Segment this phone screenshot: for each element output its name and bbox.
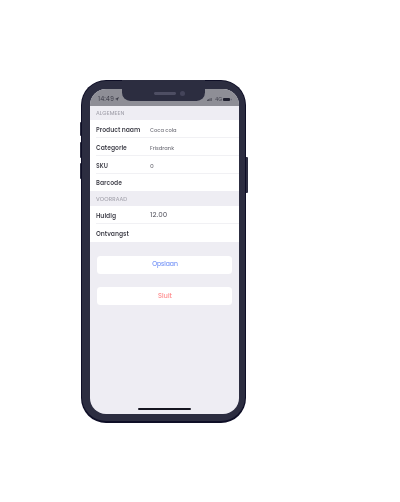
staticText: Ontvangst <box>96 230 129 239</box>
button[interactable]: Sluit <box>97 287 232 305</box>
staticText: Barcode <box>96 179 122 188</box>
button[interactable]: Product naam <box>90 120 239 138</box>
staticText: 14:49 <box>98 94 114 103</box>
staticText: Coca cola <box>150 127 177 134</box>
button[interactable]: Categorie <box>90 138 239 156</box>
staticText: Product naam <box>96 126 141 135</box>
staticText: Sluit <box>158 291 172 300</box>
button[interactable]: SKU <box>90 156 239 174</box>
staticText: Categorie <box>96 144 127 153</box>
staticText: Opslaan <box>152 260 178 269</box>
other: Location <box>115 97 119 101</box>
staticText: SKU <box>96 162 108 171</box>
staticText: VOORRAAD <box>96 195 128 203</box>
staticText: ALGEMEEN <box>96 109 125 117</box>
button[interactable]: Huidig <box>90 206 239 224</box>
button[interactable]: Ontvangst <box>90 224 239 242</box>
button[interactable]: Opslaan <box>97 256 232 274</box>
staticText: Frisdrank <box>150 145 175 152</box>
staticText: 0 <box>150 162 154 170</box>
staticText: 12.00 <box>150 210 168 220</box>
staticText: 4G <box>215 96 223 103</box>
button[interactable]: Barcode <box>90 174 239 191</box>
staticText: Huidig <box>96 212 117 221</box>
